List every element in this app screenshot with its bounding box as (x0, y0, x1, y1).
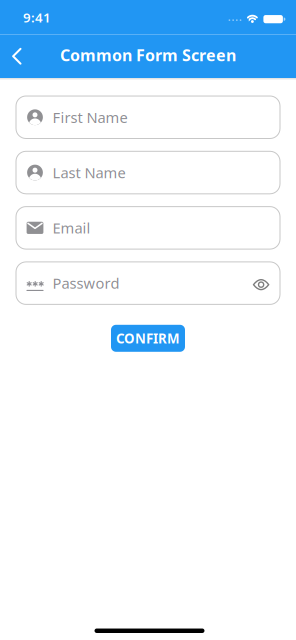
button[interactable]: Back (0, 34, 32, 78)
staticText: 9:41 (23, 8, 51, 26)
staticText: Password (52, 273, 119, 293)
button[interactable]: CONFIRM (111, 325, 185, 352)
staticText: Last Name (52, 163, 125, 182)
staticText: Common Form Screen (60, 44, 236, 66)
button[interactable]: Email (15, 206, 280, 250)
staticText: First Name (52, 107, 127, 127)
button[interactable]: Password (15, 261, 280, 305)
staticText: CONFIRM (116, 329, 180, 347)
staticText: Email (52, 218, 90, 238)
button[interactable]: Last Name (15, 151, 280, 194)
button[interactable]: Show password (253, 277, 269, 290)
button[interactable]: First Name (15, 95, 280, 139)
